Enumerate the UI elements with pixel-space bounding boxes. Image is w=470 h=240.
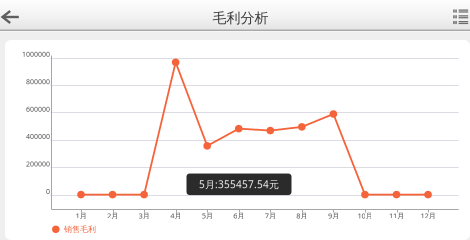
- staticText: 3月: [139, 210, 150, 221]
- staticText: 0: [46, 186, 50, 196]
- staticText: 6月: [233, 210, 244, 221]
- staticText: 7月: [265, 210, 276, 221]
- staticText: 9月: [328, 210, 339, 221]
- staticText: 4月: [170, 210, 181, 221]
- staticText: 2月: [107, 210, 118, 221]
- staticText: 毛利分析: [212, 9, 268, 27]
- staticText: 5月: [202, 210, 213, 221]
- staticText: 200000: [26, 159, 50, 168]
- staticText: 5月:355457.54元: [199, 177, 279, 191]
- staticText: 800000: [26, 77, 50, 86]
- staticText: 600000: [26, 104, 50, 114]
- staticText: 销售毛利: [64, 224, 96, 234]
- staticText: 10月: [357, 210, 372, 221]
- staticText: 12月: [421, 210, 436, 221]
- button[interactable]: Back: [0, 0, 34, 32]
- staticText: 400000: [26, 132, 50, 141]
- staticText: 8月: [296, 210, 307, 221]
- staticText: 11月: [389, 210, 404, 221]
- button[interactable]: List view: [451, 0, 470, 32]
- staticText: 1月: [75, 210, 86, 221]
- staticText: 1000000: [22, 49, 50, 59]
